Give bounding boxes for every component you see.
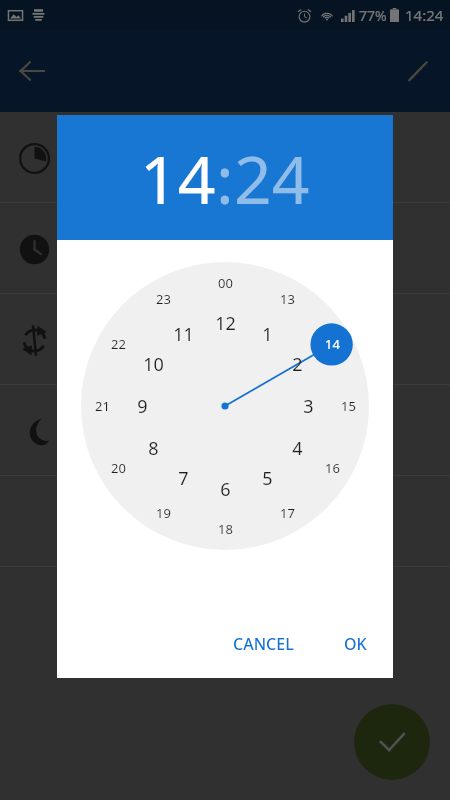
- button[interactable]: [0, 203, 450, 294]
- staticText: 19: [156, 504, 171, 522]
- staticText: 16: [325, 459, 340, 477]
- staticText: 10: [143, 352, 164, 376]
- staticText: 2: [292, 352, 303, 376]
- button[interactable]: Clock face, hour 14: [81, 262, 369, 550]
- staticText: 00: [218, 274, 233, 292]
- staticText: 17: [280, 504, 295, 522]
- staticText: 21: [95, 397, 110, 415]
- staticText: 14:24: [405, 5, 444, 25]
- button[interactable]: [0, 385, 450, 476]
- staticText: 11: [173, 322, 194, 346]
- button[interactable]: [0, 294, 450, 385]
- staticText: 77%: [359, 6, 387, 25]
- staticText: 6: [220, 477, 231, 501]
- staticText: 18: [218, 520, 233, 538]
- staticText: 13: [280, 290, 295, 308]
- staticText: OK: [344, 633, 367, 655]
- staticText: 12: [215, 311, 236, 335]
- staticText: 20: [111, 459, 126, 477]
- button[interactable]: OK: [330, 621, 381, 667]
- staticText: 14: [325, 335, 340, 353]
- button[interactable]: [0, 112, 450, 203]
- button[interactable]: 14: [140, 133, 216, 223]
- button[interactable]: Edit: [396, 49, 440, 93]
- staticText: CANCEL: [233, 633, 294, 655]
- button[interactable]: CANCEL: [219, 621, 308, 667]
- staticText: 15: [341, 397, 356, 415]
- button[interactable]: 24: [234, 133, 310, 223]
- staticText: 1: [262, 322, 273, 346]
- button[interactable]: 14: [57, 115, 393, 240]
- staticText: 8: [148, 436, 159, 460]
- staticText: 5: [262, 466, 273, 490]
- staticText: 23: [156, 290, 171, 308]
- button[interactable]: Back: [10, 49, 54, 93]
- staticText: 4: [292, 436, 303, 460]
- staticText: 3: [303, 394, 314, 418]
- staticText: :: [216, 133, 234, 223]
- button[interactable]: [0, 476, 450, 567]
- staticText: 7: [178, 466, 189, 490]
- staticText: 9: [137, 394, 148, 418]
- button[interactable]: Confirm: [354, 704, 430, 780]
- staticText: 22: [111, 335, 126, 353]
